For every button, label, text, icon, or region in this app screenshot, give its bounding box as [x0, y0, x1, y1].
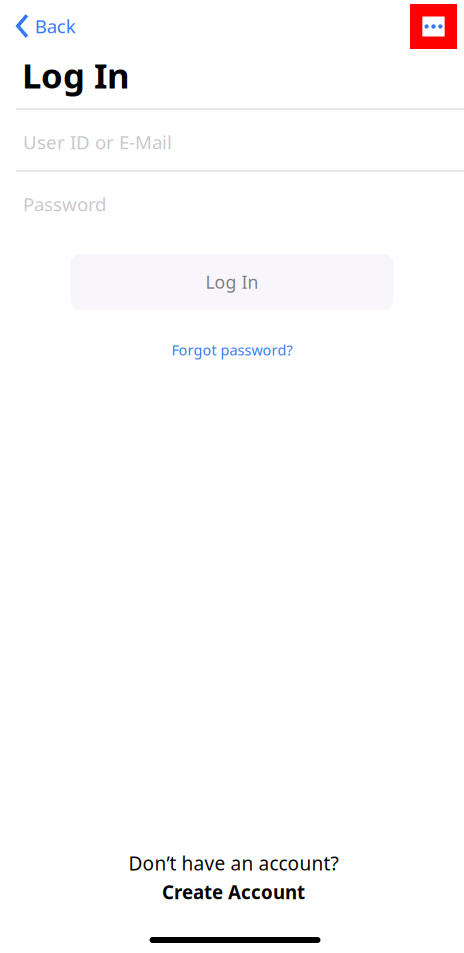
button[interactable]: Back — [0, 4, 88, 48]
staticText: User ID or E-Mail — [23, 129, 172, 155]
staticText: Log In — [205, 270, 258, 294]
button[interactable]: User ID or E-Mail — [0, 110, 464, 170]
button[interactable]: Password — [0, 172, 464, 232]
button[interactable]: Create Account — [162, 879, 305, 905]
button[interactable]: Forgot password? — [142, 310, 322, 368]
staticText: Log In — [22, 52, 130, 98]
button[interactable]: Log In — [70, 254, 393, 310]
staticText: Create Account — [162, 880, 305, 904]
staticText: Forgot password? — [171, 340, 292, 360]
staticText: Password — [23, 191, 106, 217]
staticText: Back — [35, 13, 76, 39]
button[interactable]: More options — [410, 4, 457, 49]
staticText: Don’t have an account? — [128, 850, 338, 876]
